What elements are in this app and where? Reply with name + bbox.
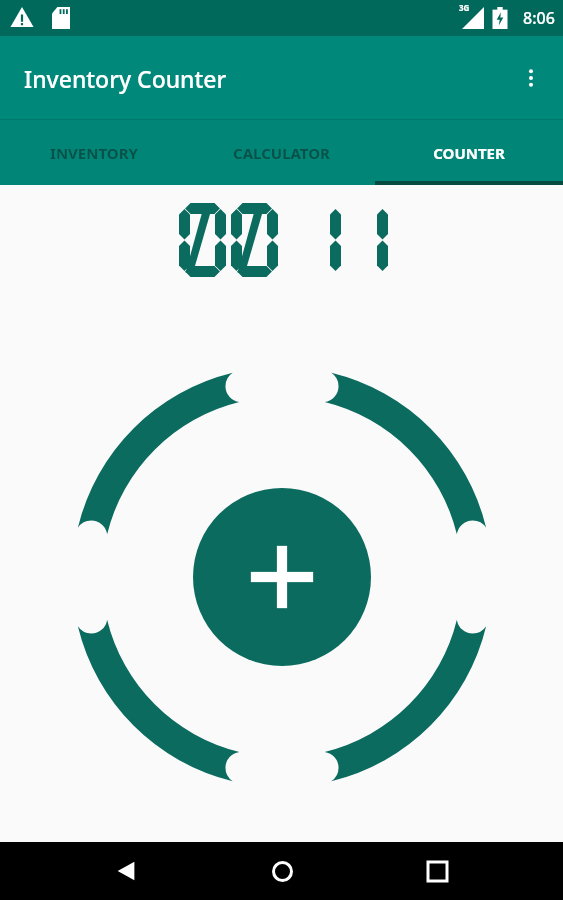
button[interactable]: Back <box>97 842 155 900</box>
button[interactable]: CALCULATOR <box>187 120 375 185</box>
button[interactable]: Recent apps <box>408 842 466 900</box>
staticText: INVENTORY <box>50 143 138 163</box>
button[interactable]: Home <box>253 842 311 900</box>
button[interactable]: INVENTORY <box>0 120 187 185</box>
button[interactable]: More options <box>507 54 555 102</box>
staticText: COUNTER <box>433 143 505 163</box>
button[interactable]: Increment counter <box>193 488 371 666</box>
staticText: 8:06 <box>523 7 555 29</box>
staticText: 3G <box>459 2 470 13</box>
staticText: CALCULATOR <box>233 143 330 163</box>
staticText: Inventory Counter <box>24 63 227 94</box>
button[interactable]: COUNTER <box>375 120 563 185</box>
